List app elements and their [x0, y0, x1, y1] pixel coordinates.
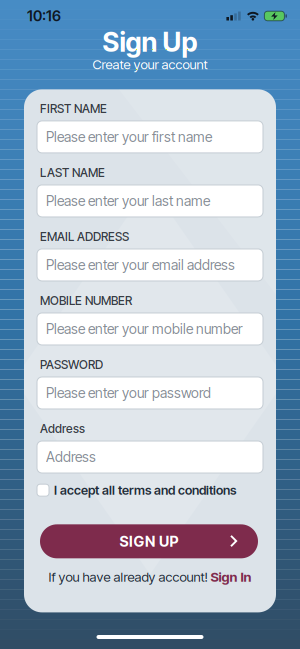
staticText: FIRST NAME: [40, 101, 107, 116]
staticText: If you have already account!: [48, 569, 207, 585]
staticText: Please enter your email address: [46, 256, 235, 273]
button[interactable]: Please enter your last name: [37, 185, 263, 217]
staticText: Please enter your first name: [46, 128, 212, 145]
staticText: Address: [46, 448, 96, 465]
staticText: Sign Up: [102, 26, 197, 58]
staticText: Sign In: [210, 569, 251, 585]
staticText: Please enter your mobile number: [46, 320, 243, 337]
staticText: LAST NAME: [40, 165, 105, 180]
button[interactable]: Please enter your password: [37, 377, 263, 409]
button[interactable]: Please enter your email address: [37, 249, 263, 281]
button[interactable]: Address: [37, 441, 263, 473]
staticText: PASSWORD: [40, 357, 103, 372]
staticText: Create your account: [92, 56, 207, 72]
staticText: Please enter your last name: [46, 192, 210, 209]
staticText: Please enter your password: [46, 384, 211, 401]
button[interactable]: Please enter your first name: [37, 121, 263, 153]
button[interactable]: Please enter your mobile number: [37, 313, 263, 345]
button[interactable]: I accept all terms and conditions: [37, 482, 236, 498]
staticText: 10:16: [27, 7, 61, 25]
staticText: EMAIL ADDRESS: [40, 229, 129, 244]
staticText: SIGN UP: [119, 532, 178, 550]
button[interactable]: If you have already account!: [37, 569, 263, 585]
button[interactable]: SIGN UP: [40, 524, 258, 558]
staticText: MOBILE NUMBER: [40, 293, 132, 308]
staticText: I accept all terms and conditions: [54, 482, 236, 498]
staticText: Address: [40, 421, 85, 436]
